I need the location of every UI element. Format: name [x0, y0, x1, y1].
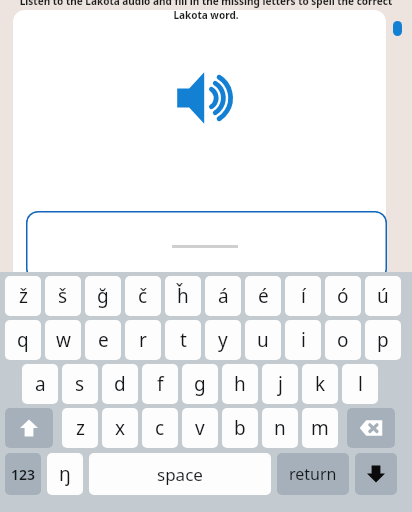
button[interactable]: s	[62, 364, 98, 404]
staticText: z	[76, 415, 85, 441]
button[interactable]: Hide keyboard	[355, 453, 397, 495]
button[interactable]: Shift	[5, 408, 53, 448]
staticText: q	[17, 327, 29, 353]
button[interactable]: return	[277, 453, 349, 495]
button[interactable]: e	[85, 320, 121, 360]
staticText: k	[315, 371, 326, 397]
staticText: y	[218, 327, 228, 353]
staticText: f	[157, 371, 164, 397]
button[interactable]: Backspace	[347, 408, 395, 448]
staticText: a	[35, 371, 46, 397]
staticText: o	[337, 327, 349, 353]
staticText: return	[289, 463, 337, 485]
staticText: č	[138, 283, 148, 309]
staticText: á	[218, 283, 229, 309]
staticText: r	[139, 327, 147, 353]
button[interactable]: b	[222, 408, 258, 448]
button[interactable]: x	[102, 408, 138, 448]
staticText: ž	[19, 283, 28, 309]
staticText: w	[56, 327, 71, 353]
button[interactable]: i	[285, 320, 321, 360]
staticText: m	[311, 415, 329, 441]
staticText: ŋ	[59, 461, 71, 487]
button[interactable]: z	[62, 408, 98, 448]
button[interactable]: u	[245, 320, 281, 360]
staticText: Listen to the Lakota audio and fill in t…	[16, 0, 396, 22]
staticText: space	[157, 463, 203, 486]
staticText: i	[301, 327, 306, 353]
button[interactable]: š	[45, 276, 81, 316]
button[interactable]: o	[325, 320, 361, 360]
button[interactable]: č	[125, 276, 161, 316]
staticText: š	[58, 283, 68, 309]
button[interactable]: p	[365, 320, 401, 360]
staticText: é	[258, 283, 269, 309]
staticText: p	[377, 327, 389, 353]
button[interactable]: n	[262, 408, 298, 448]
staticText: t	[180, 327, 187, 353]
button[interactable]: r	[125, 320, 161, 360]
staticText: u	[257, 327, 269, 353]
staticText: n	[274, 415, 286, 441]
button[interactable]: f	[142, 364, 178, 404]
button[interactable]: v	[182, 408, 218, 448]
staticText: d	[114, 371, 126, 397]
button[interactable]: ž	[5, 276, 41, 316]
button[interactable]: k	[302, 364, 338, 404]
button[interactable]: l	[342, 364, 378, 404]
staticText: c	[155, 415, 165, 441]
button[interactable]: t	[165, 320, 201, 360]
button[interactable]: ó	[325, 276, 361, 316]
staticText: 123	[11, 465, 36, 484]
button[interactable]: á	[205, 276, 241, 316]
staticText: s	[75, 371, 85, 397]
staticText: ȟ	[177, 283, 189, 309]
staticText: b	[234, 415, 246, 441]
staticText: í	[301, 283, 306, 309]
button[interactable]: q	[5, 320, 41, 360]
button[interactable]: h	[222, 364, 258, 404]
button[interactable]: m	[302, 408, 338, 448]
button[interactable]: Scroll	[393, 21, 402, 36]
button[interactable]: Play audio	[176, 70, 236, 126]
staticText: ğ	[97, 283, 109, 309]
staticText: ú	[377, 283, 389, 309]
button[interactable]: c	[142, 408, 178, 448]
staticText: ó	[337, 283, 349, 309]
button[interactable]: space	[89, 453, 271, 495]
button[interactable]: g	[182, 364, 218, 404]
button[interactable]: 123	[5, 453, 41, 495]
button[interactable]	[26, 211, 387, 281]
button[interactable]: ğ	[85, 276, 121, 316]
button[interactable]: ŋ	[47, 453, 83, 495]
staticText: v	[195, 415, 205, 441]
button[interactable]: j	[262, 364, 298, 404]
button[interactable]: w	[45, 320, 81, 360]
button[interactable]: y	[205, 320, 241, 360]
button[interactable]: í	[285, 276, 321, 316]
staticText: e	[98, 327, 109, 353]
staticText: g	[194, 371, 206, 397]
button[interactable]: é	[245, 276, 281, 316]
button[interactable]: d	[102, 364, 138, 404]
button[interactable]: ȟ	[165, 276, 201, 316]
staticText: l	[358, 371, 363, 397]
staticText: h	[234, 371, 246, 397]
staticText: j	[278, 371, 283, 397]
button[interactable]: a	[22, 364, 58, 404]
staticText: x	[115, 415, 126, 441]
button[interactable]: ú	[365, 276, 401, 316]
